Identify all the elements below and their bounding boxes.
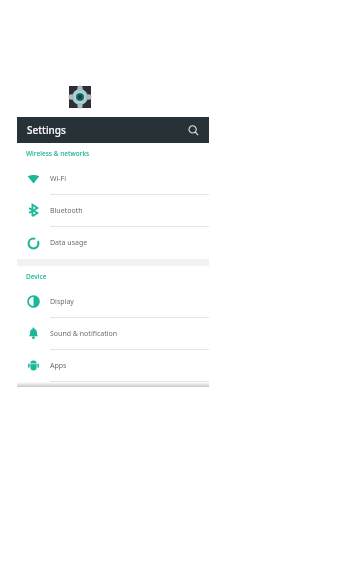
staticText: Display xyxy=(50,297,74,307)
button[interactable]: Apps xyxy=(17,350,209,382)
button[interactable]: Display xyxy=(17,286,209,318)
staticText: Wireless & networks xyxy=(26,149,90,158)
button[interactable]: Wi-Fi xyxy=(17,163,209,195)
staticText: Device xyxy=(26,272,47,281)
button[interactable]: Bluetooth xyxy=(17,195,209,227)
staticText: Sound & notification xyxy=(50,329,118,339)
staticText: Apps xyxy=(50,361,67,371)
button[interactable]: Sound & notification xyxy=(17,318,209,350)
button[interactable]: Search xyxy=(184,121,202,139)
staticText: Wi-Fi xyxy=(50,174,67,184)
staticText: Data usage xyxy=(50,238,88,248)
staticText: Bluetooth xyxy=(50,206,83,216)
staticText: Settings xyxy=(27,123,66,137)
button[interactable]: Data usage xyxy=(17,227,209,259)
button[interactable]: Settings app icon xyxy=(69,86,91,108)
